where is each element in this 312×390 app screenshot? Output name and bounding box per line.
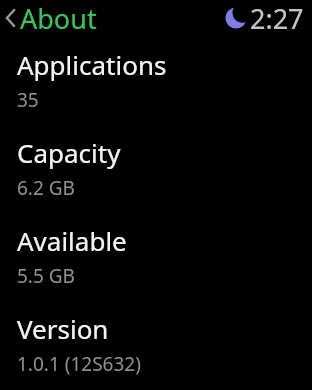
staticText: Applications (17, 47, 167, 82)
staticText: 6.2 GB (17, 175, 75, 201)
button[interactable]: Available (0, 220, 312, 308)
staticText: Capacity (17, 135, 121, 170)
button[interactable]: Capacity (0, 132, 312, 220)
staticText: 5.5 GB (17, 263, 75, 289)
button[interactable]: Applications (0, 44, 312, 132)
staticText: 35 (17, 87, 39, 113)
staticText: 1.0.1 (12S632) (17, 351, 141, 377)
staticText: 2:27 (250, 0, 304, 36)
button[interactable]: Version (0, 308, 312, 390)
staticText: Version (17, 311, 109, 346)
other: Do not disturb (225, 7, 247, 29)
button[interactable]: About (0, 0, 105, 36)
staticText: About (20, 0, 97, 36)
staticText: Available (17, 223, 127, 258)
